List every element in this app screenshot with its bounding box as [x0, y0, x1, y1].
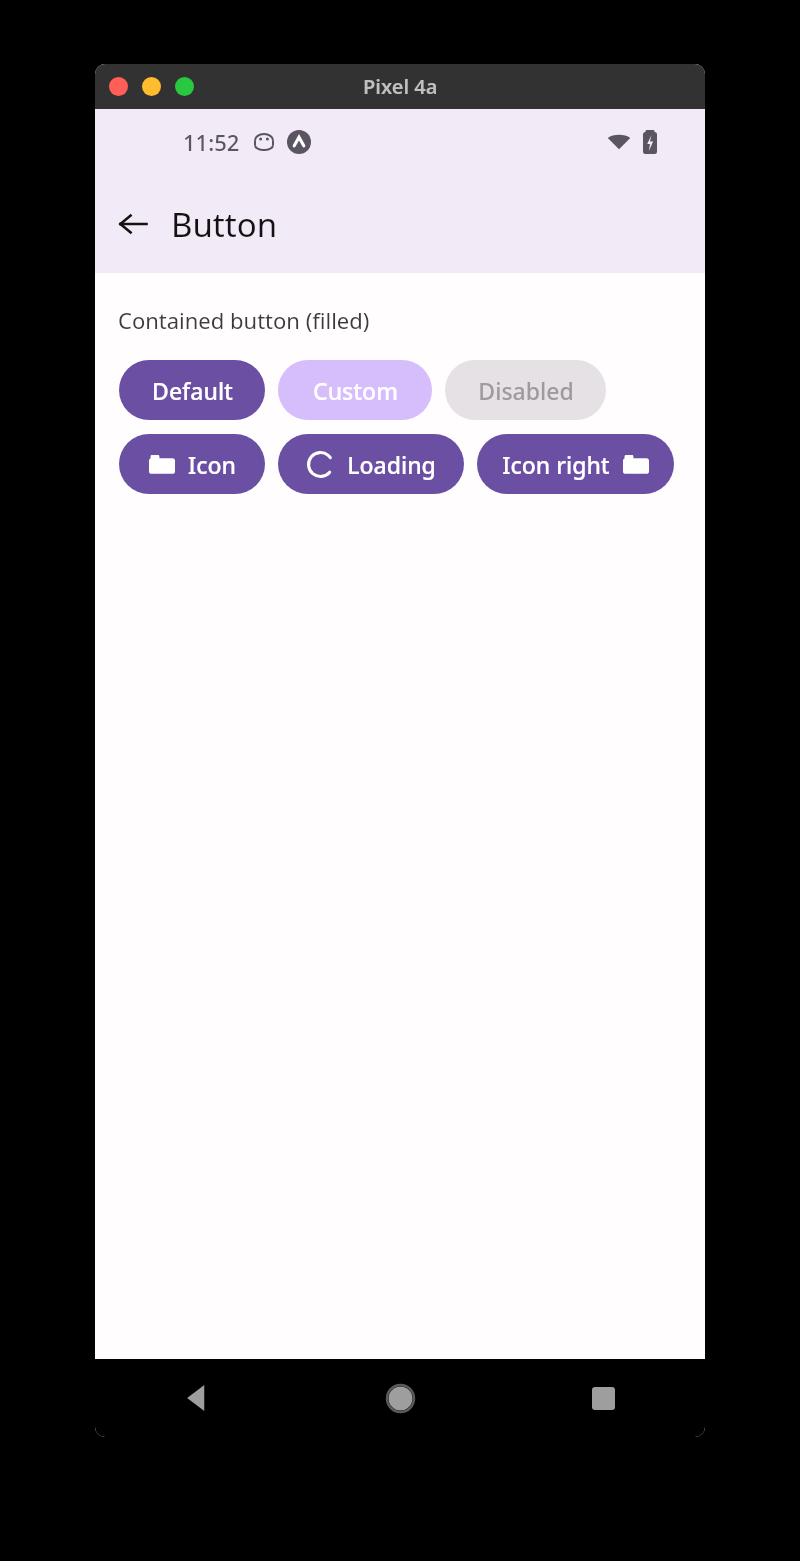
button[interactable]: Disabled: [445, 360, 606, 420]
button[interactable]: Icon: [119, 434, 265, 494]
button[interactable]: Back: [95, 1359, 299, 1437]
button[interactable]: Custom: [278, 360, 432, 420]
button[interactable]: Loading: [278, 434, 464, 494]
button[interactable]: Back: [109, 200, 157, 248]
staticText: Button: [171, 202, 278, 247]
staticText: Contained button (filled): [118, 305, 370, 335]
button[interactable]: Default: [119, 360, 265, 420]
button[interactable]: Icon right: [477, 434, 674, 494]
staticText: 11:52: [183, 127, 240, 157]
staticText: Default: [152, 375, 233, 406]
staticText: Disabled: [478, 375, 574, 406]
staticText: Icon right: [502, 449, 610, 480]
button[interactable]: Recents: [502, 1359, 705, 1437]
staticText: Loading: [347, 449, 436, 480]
staticText: Pixel 4a: [363, 73, 438, 100]
button[interactable]: Home: [299, 1359, 502, 1437]
staticText: Icon: [188, 449, 236, 480]
staticText: Custom: [313, 375, 398, 406]
